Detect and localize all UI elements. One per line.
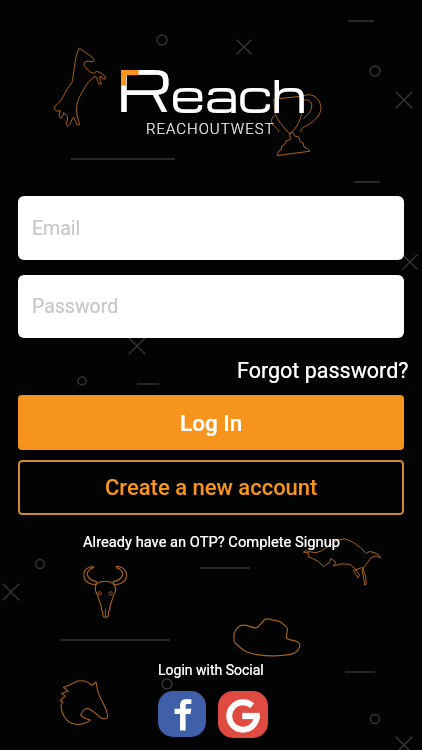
button[interactable]: Login with Facebook (158, 691, 206, 737)
button[interactable]: Create a new account (18, 460, 404, 515)
button[interactable]: Already have an OTP? Complete Signup (77, 531, 346, 552)
staticText: Forgot password? (237, 358, 409, 383)
staticText: Already have an OTP? Complete Signup (83, 533, 340, 550)
staticText: Email (32, 217, 81, 240)
staticText: Create a new account (105, 475, 318, 501)
staticText: each (171, 62, 307, 125)
staticText: Login with Social (158, 662, 264, 678)
button[interactable]: Password (18, 275, 404, 338)
staticText: REACHOUTWEST (146, 120, 275, 138)
staticText: R (116, 47, 174, 127)
button[interactable]: Forgot password? (232, 355, 414, 386)
staticText: Password (32, 295, 119, 318)
button[interactable]: Log In (18, 395, 404, 450)
button[interactable]: Login with Google (218, 691, 268, 738)
button[interactable]: Email (18, 196, 404, 260)
staticText: Log In (180, 410, 243, 436)
